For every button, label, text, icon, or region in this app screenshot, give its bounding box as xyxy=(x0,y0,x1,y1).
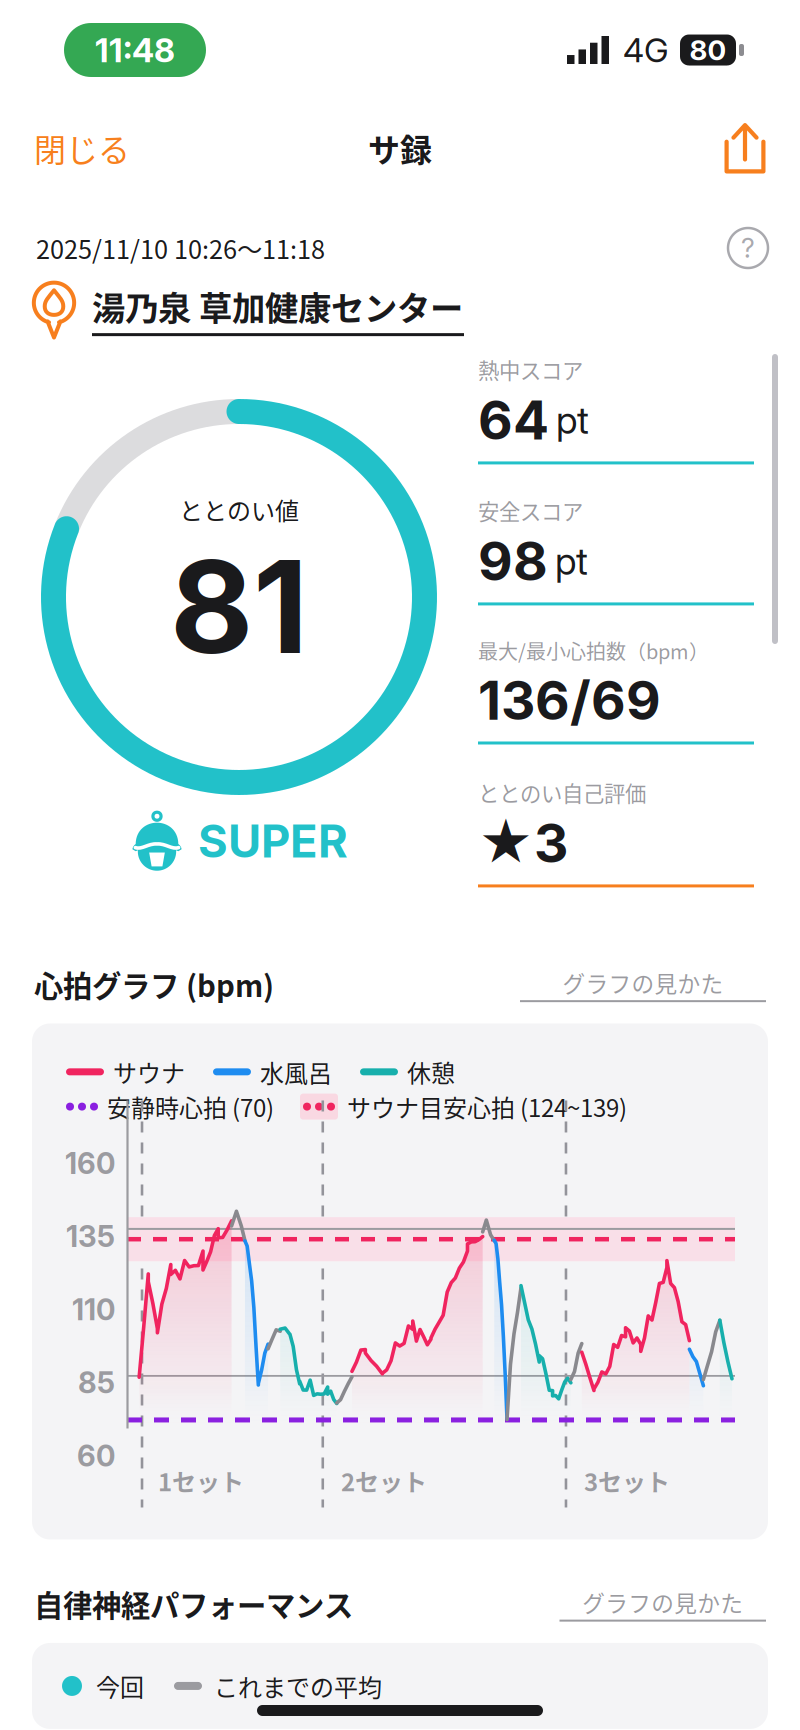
button[interactable]: 閉じる xyxy=(0,111,150,185)
staticText: 湯乃泉 草加健康センター xyxy=(92,282,463,330)
staticText: 閉じる xyxy=(34,125,130,171)
staticText: 熱中スコア xyxy=(478,354,583,385)
staticText: SUPER xyxy=(198,814,348,868)
staticText: 1セット xyxy=(158,1463,244,1498)
staticText: 水風呂 xyxy=(260,1054,332,1089)
staticText: サウナ xyxy=(113,1054,185,1089)
staticText: pt xyxy=(556,398,589,443)
staticText: 2025/11/10 10:26〜11:18 xyxy=(36,230,325,266)
staticText: 最大/最小心拍数（bpm） xyxy=(478,636,709,665)
staticText: 64 xyxy=(478,388,549,452)
staticText: 98 xyxy=(478,529,548,593)
staticText: 136/69 xyxy=(478,668,661,732)
staticText: グラフの見かた xyxy=(562,966,723,999)
staticText: 自律神経パフォーマンス xyxy=(34,1582,353,1625)
staticText: 135 xyxy=(66,1219,115,1254)
staticText: ? xyxy=(741,232,755,264)
button[interactable]: グラフの見かた xyxy=(559,1586,766,1622)
staticText: ととのい自己評価 xyxy=(478,777,646,808)
button[interactable]: ヘルプ xyxy=(726,226,770,270)
staticText: ととのい値 xyxy=(179,492,299,527)
button[interactable]: 共有 xyxy=(702,114,800,182)
staticText: 11:48 xyxy=(95,30,175,70)
staticText: 4G xyxy=(623,30,669,70)
staticText: 安全スコア xyxy=(478,495,583,526)
staticText: サ録 xyxy=(368,125,432,171)
staticText: 160 xyxy=(65,1145,115,1181)
staticText: pt xyxy=(555,539,588,584)
staticText: 81 xyxy=(170,529,308,684)
staticText: サウナ目安心拍 (124~139) xyxy=(347,1089,627,1124)
staticText: 3セット xyxy=(584,1463,670,1498)
staticText: ★3 xyxy=(478,811,568,875)
staticText: 80 xyxy=(689,33,726,67)
staticText: 心拍グラフ (bpm) xyxy=(34,963,274,1005)
staticText: 安静時心拍 (70) xyxy=(107,1089,274,1124)
staticText: 2セット xyxy=(341,1463,427,1498)
staticText: これまでの平均 xyxy=(214,1669,382,1703)
staticText: グラフの見かた xyxy=(582,1586,743,1619)
button[interactable]: グラフの見かた xyxy=(520,966,766,1002)
staticText: 85 xyxy=(78,1365,115,1400)
staticText: 休憩 xyxy=(407,1054,455,1089)
staticText: 110 xyxy=(72,1292,115,1327)
staticText: 60 xyxy=(77,1438,115,1473)
staticText: 今回 xyxy=(96,1669,144,1703)
